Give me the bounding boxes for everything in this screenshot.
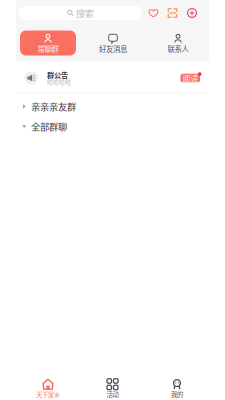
button[interactable]: 联系人: [150, 30, 206, 55]
staticText: 哈哈哈哈: [47, 77, 71, 86]
staticText: 群公告: [47, 69, 68, 80]
button[interactable]: Add: [187, 8, 197, 18]
staticText: 阅读: [182, 72, 198, 84]
button[interactable]: 天下家乡: [16, 378, 80, 397]
staticText: 好友消息: [99, 43, 127, 54]
button[interactable]: 好友消息: [85, 30, 141, 55]
staticText: 搜索: [76, 6, 94, 20]
button[interactable]: 群公告: [16, 65, 209, 91]
button[interactable]: 搜索: [19, 6, 142, 20]
staticText: 常聊群: [37, 43, 58, 54]
button[interactable]: Favorites: [148, 8, 158, 18]
staticText: 全部群聊: [31, 120, 67, 133]
staticText: 联系人: [167, 43, 188, 54]
staticText: 天下家乡: [36, 390, 60, 399]
staticText: 活动: [106, 390, 118, 399]
button[interactable]: 全部群聊: [16, 117, 209, 135]
staticText: 我的: [171, 390, 183, 399]
button[interactable]: 活动: [80, 378, 144, 397]
button[interactable]: 我的: [145, 378, 209, 397]
button[interactable]: Scan: [167, 8, 177, 18]
staticText: 亲亲亲友群: [31, 100, 76, 113]
button[interactable]: 亲亲亲友群: [16, 97, 209, 115]
button[interactable]: 常聊群: [20, 30, 76, 55]
